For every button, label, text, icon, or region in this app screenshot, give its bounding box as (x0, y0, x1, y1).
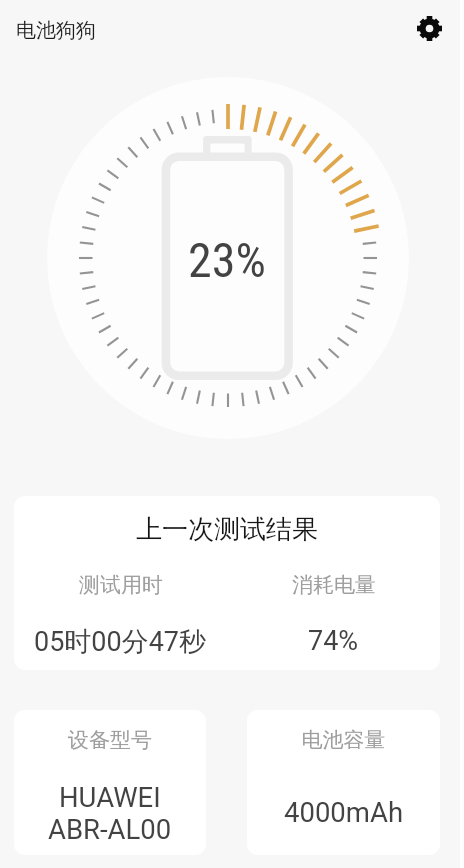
staticText: HUAWEI (59, 781, 161, 813)
staticText: 设备型号 (14, 727, 206, 753)
staticText: 4000mAh (284, 796, 404, 828)
button[interactable]: Settings (405, 4, 453, 52)
staticText: ABR-AL00 (48, 813, 172, 845)
button[interactable]: 上一次测试结果 (14, 496, 440, 670)
button[interactable]: 设备型号 (14, 710, 206, 855)
staticText: 05时00分47秒 (34, 625, 207, 659)
staticText: 上一次测试结果 (14, 513, 440, 546)
staticText: 消耗电量 (292, 572, 376, 598)
staticText: 测试用时 (79, 572, 163, 598)
button[interactable]: 电池容量 (247, 710, 440, 855)
staticText: 23% (0, 232, 455, 288)
staticText: 电池狗狗 (16, 18, 96, 43)
staticText: 74% (308, 625, 359, 657)
staticText: 电池容量 (247, 727, 440, 753)
